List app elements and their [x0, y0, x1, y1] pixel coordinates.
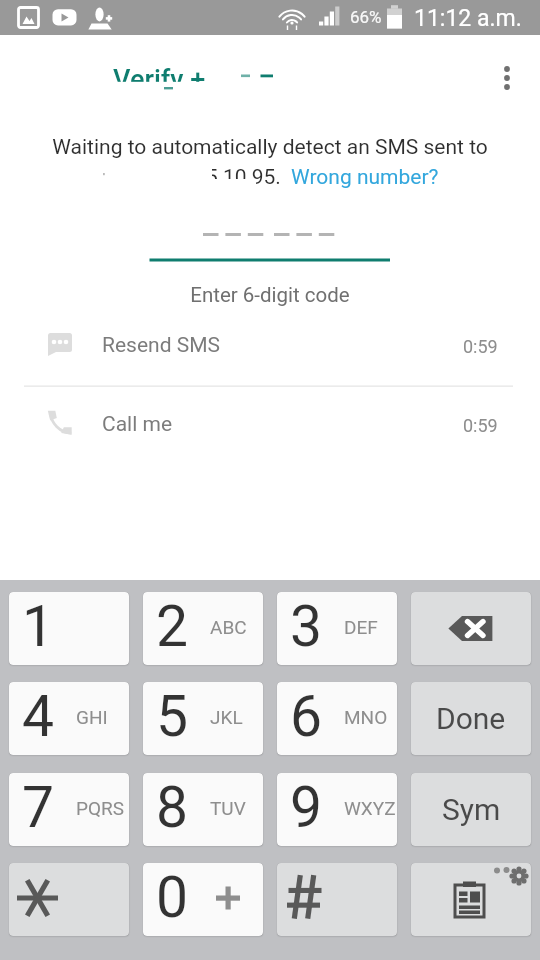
staticText: 5 [156, 683, 189, 750]
staticText: 7 [22, 774, 55, 841]
staticText: Resend SMS [102, 333, 220, 358]
staticText: DEF [344, 616, 378, 638]
staticText: WXYZ [344, 797, 396, 819]
button[interactable]: Pound [277, 863, 397, 936]
button[interactable]: Backspace [411, 592, 531, 665]
button[interactable]: Sym [411, 773, 531, 846]
button[interactable]: 0 [143, 863, 263, 936]
staticText: +91 98765 10 95. [118, 165, 281, 190]
staticText: Call me [102, 412, 173, 437]
staticText: GHI [76, 706, 108, 728]
button[interactable]: 6 [277, 682, 397, 755]
staticText: 1 [22, 593, 55, 660]
staticText: 66% [350, 7, 382, 27]
staticText: 11:12 a.m. [414, 5, 522, 32]
button[interactable]: Done [411, 682, 531, 755]
staticText: MNO [344, 706, 388, 728]
button[interactable]: Wrong number? [291, 165, 439, 190]
staticText: 2 [156, 593, 189, 660]
staticText: 3 [290, 593, 323, 660]
staticText: 0:59 [463, 415, 498, 436]
staticText: JKL [210, 706, 243, 728]
staticText: Done [436, 701, 506, 736]
button[interactable]: More options [487, 50, 527, 90]
staticText: Verify + [113, 64, 206, 96]
staticText: PQRS [76, 797, 125, 819]
staticText: 9 [290, 774, 323, 841]
button[interactable]: Resend SMS [0, 329, 540, 385]
staticText: Waiting to automatically detect an SMS s… [0, 135, 540, 160]
button[interactable]: 9 [277, 773, 397, 846]
staticText: Sym [442, 792, 501, 827]
button[interactable]: 2 [143, 592, 263, 665]
button[interactable]: Call me [0, 408, 540, 464]
staticText: 6 [290, 683, 323, 750]
staticText: ABC [210, 616, 247, 638]
staticText: 4 [22, 683, 55, 750]
button[interactable]: 4 [9, 682, 129, 755]
staticText: 0:59 [463, 336, 498, 357]
staticText: 8 [156, 774, 189, 841]
button[interactable]: 5 [143, 682, 263, 755]
button[interactable]: Star [9, 863, 129, 936]
button[interactable]: 1 [9, 592, 129, 665]
button[interactable]: 8 [143, 773, 263, 846]
button[interactable]: 7 [9, 773, 129, 846]
button[interactable]: 3 [277, 592, 397, 665]
staticText: Wrong number? [291, 165, 439, 190]
button[interactable]: Keyboard settings [411, 863, 531, 936]
staticText: TUV [210, 797, 246, 819]
staticText: 0 [156, 864, 189, 931]
staticText: Enter 6-digit code [0, 283, 540, 307]
